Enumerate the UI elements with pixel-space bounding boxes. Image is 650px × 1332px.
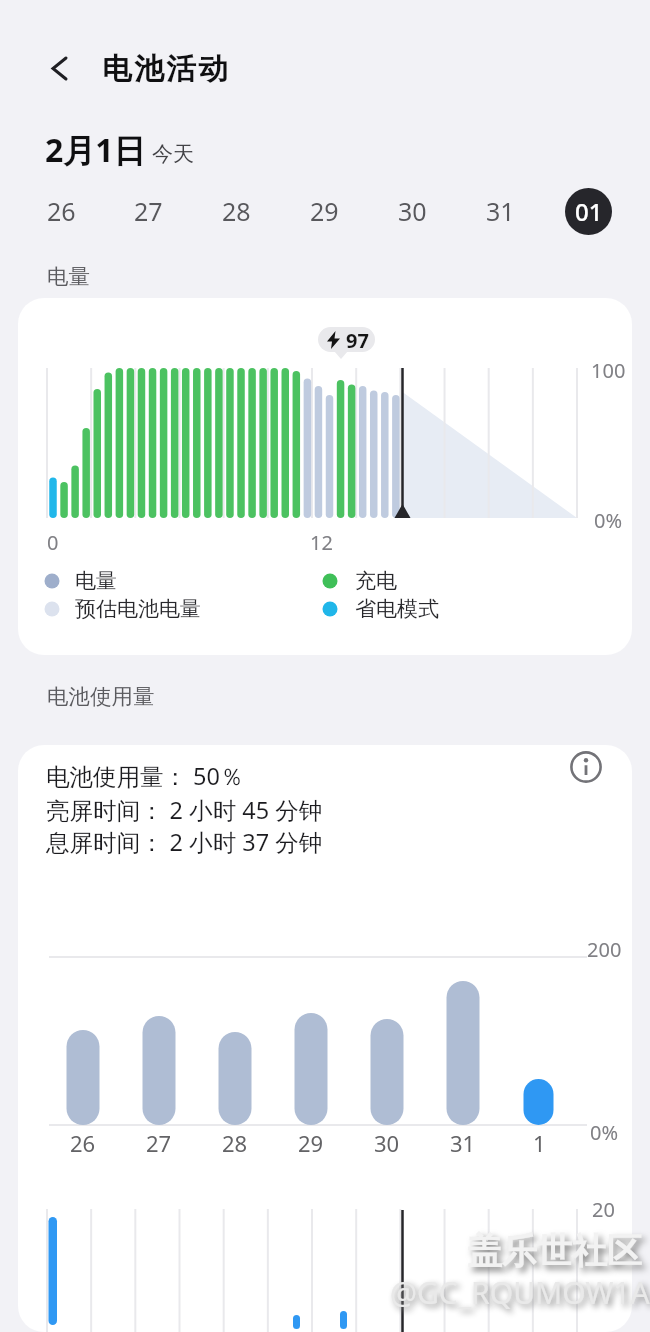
staticText: 电池使用量： 50％ — [46, 760, 244, 792]
button[interactable]: 27 — [105, 187, 192, 235]
staticText: 今天 — [152, 141, 194, 167]
button[interactable]: 30 — [368, 187, 456, 235]
staticText: 0% — [590, 1119, 619, 1146]
staticText: 27 — [146, 1128, 172, 1158]
button[interactable]: 28 — [192, 187, 280, 235]
staticText: 29 — [298, 1128, 324, 1158]
staticText: 预估电池电量 — [75, 596, 201, 622]
staticText: 28 — [222, 1128, 248, 1158]
staticText: 29 — [310, 194, 339, 228]
button[interactable]: 26 — [18, 187, 105, 235]
button[interactable]: 29 — [280, 187, 368, 235]
staticText: 200 — [587, 936, 622, 963]
staticText: 26 — [70, 1128, 96, 1158]
staticText: 97 — [346, 327, 369, 354]
staticText: 息屏时间： 2 小时 37 分钟 — [46, 826, 323, 858]
staticText: 电量 — [47, 263, 90, 290]
staticText: 盖乐世社区 — [467, 1229, 642, 1273]
staticText: @GC_RQUMOW1A — [390, 1272, 650, 1313]
staticText: 省电模式 — [355, 596, 439, 622]
staticText: 2月1日 — [45, 128, 146, 172]
staticText: 26 — [47, 194, 76, 228]
staticText: 0 — [47, 529, 59, 556]
staticText: 1 — [533, 1128, 546, 1158]
staticText: 0% — [594, 507, 623, 534]
button[interactable] — [564, 745, 608, 789]
staticText: 充电 — [355, 568, 397, 594]
staticText: 28 — [222, 194, 251, 228]
staticText: 30 — [374, 1128, 400, 1158]
staticText: 01 — [575, 195, 603, 228]
staticText: 31 — [486, 194, 515, 228]
staticText: 电池使用量 — [47, 683, 155, 710]
staticText: 27 — [134, 194, 163, 228]
button[interactable]: 01 — [565, 188, 612, 235]
staticText: 亮屏时间： 2 小时 45 分钟 — [46, 794, 323, 826]
staticText: 100 — [591, 357, 626, 384]
button[interactable] — [38, 47, 82, 91]
staticText: 30 — [398, 194, 427, 228]
staticText: 电量 — [75, 568, 117, 594]
staticText: 20 — [592, 1196, 615, 1223]
staticText: 31 — [450, 1128, 476, 1158]
staticText: 12 — [310, 529, 333, 556]
button[interactable]: 31 — [456, 187, 544, 235]
staticText: 电池活动 — [101, 51, 229, 88]
